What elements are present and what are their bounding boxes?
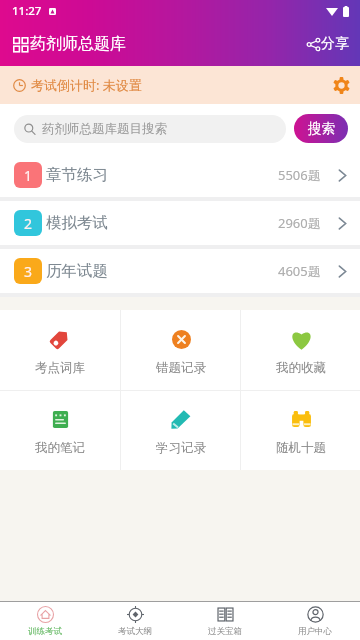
staticText: 模拟考试: [46, 213, 108, 233]
staticText: 用户中心: [298, 626, 332, 637]
staticText: 2960题: [278, 214, 321, 232]
button[interactable]: 药剂师总题库题目搜索: [14, 115, 286, 143]
staticText: 搜索: [308, 120, 335, 137]
staticText: 考试大纲: [118, 626, 152, 637]
staticText: 3: [24, 262, 33, 281]
button[interactable]: 学习记录: [121, 391, 240, 470]
staticText: 1: [24, 166, 33, 185]
button[interactable]: 考试倒计时: 未设置: [0, 66, 360, 104]
button[interactable]: 过关宝箱: [180, 602, 270, 640]
button[interactable]: 分享: [305, 31, 351, 57]
button[interactable]: 随机十题: [241, 391, 360, 470]
button[interactable]: 搜索: [294, 114, 348, 143]
staticText: 药剂师总题库: [30, 34, 126, 54]
staticText: 11:27: [12, 3, 42, 19]
staticText: 学习记录: [156, 440, 206, 456]
staticText: 2: [24, 214, 33, 233]
staticText: 历年试题: [46, 261, 108, 281]
button[interactable]: 训练考试: [0, 602, 90, 640]
button[interactable]: 3: [0, 249, 360, 293]
staticText: 我的收藏: [276, 360, 326, 376]
button[interactable]: 用户中心: [270, 602, 360, 640]
button[interactable]: 我的收藏: [241, 310, 360, 390]
staticText: 药剂师总题库题目搜索: [42, 121, 167, 137]
staticText: 随机十题: [276, 440, 326, 456]
button[interactable]: 1: [0, 153, 360, 197]
staticText: 4605题: [278, 262, 321, 280]
button[interactable]: 2: [0, 201, 360, 245]
button[interactable]: Settings: [332, 76, 351, 95]
staticText: 章节练习: [46, 165, 108, 185]
staticText: 训练考试: [28, 626, 62, 637]
staticText: 过关宝箱: [208, 626, 242, 637]
staticText: 5506题: [278, 166, 321, 184]
button[interactable]: 考试大纲: [90, 602, 180, 640]
staticText: 考点词库: [35, 360, 85, 376]
staticText: 考试倒计时: 未设置: [31, 76, 142, 94]
button[interactable]: 错题记录: [121, 310, 240, 390]
staticText: 我的笔记: [35, 440, 85, 456]
button[interactable]: 考点词库: [0, 310, 120, 390]
staticText: 错题记录: [156, 360, 206, 376]
button[interactable]: 我的笔记: [0, 391, 120, 470]
staticText: 分享: [321, 35, 349, 53]
